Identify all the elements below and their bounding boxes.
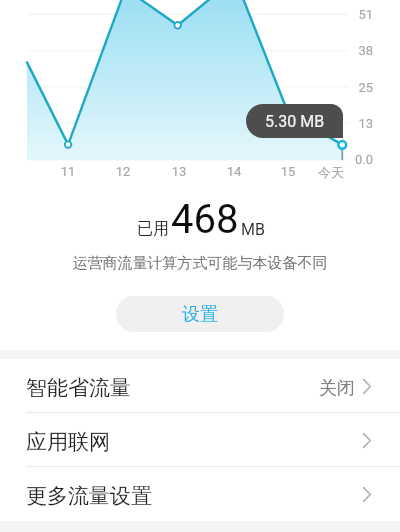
staticText: 今天 [306, 164, 356, 180]
staticText: MB [241, 220, 265, 239]
staticText: 应用联网 [26, 429, 110, 455]
staticText: 51 [333, 7, 373, 22]
staticText: 11 [43, 164, 93, 179]
other: Open [363, 433, 371, 448]
staticText: 已用 [137, 219, 169, 239]
staticText: 38 [333, 43, 373, 58]
staticText: 智能省流量 [26, 375, 131, 401]
staticText: 5.30 MB [265, 112, 325, 131]
button[interactable]: 智能省流量 [0, 359, 400, 413]
button[interactable]: 应用联网 [0, 413, 400, 467]
staticText: 15 [263, 164, 313, 179]
staticText: 468 [171, 196, 239, 236]
staticText: 12 [98, 164, 148, 179]
staticText: 设置 [182, 303, 218, 326]
staticText: 更多流量设置 [26, 483, 152, 509]
staticText: 14 [209, 164, 259, 179]
other: Open [363, 379, 371, 394]
button[interactable]: 更多流量设置 [0, 467, 400, 521]
staticText: 运营商流量计算方式可能与本设备不同 [0, 254, 400, 273]
other: Open [363, 487, 371, 502]
staticText: 13 [333, 116, 373, 131]
staticText: 关闭 [319, 377, 355, 400]
staticText: 25 [333, 80, 373, 95]
staticText: 0.0 [333, 152, 373, 167]
button[interactable]: 设置 [116, 296, 284, 332]
staticText: 13 [154, 164, 204, 179]
